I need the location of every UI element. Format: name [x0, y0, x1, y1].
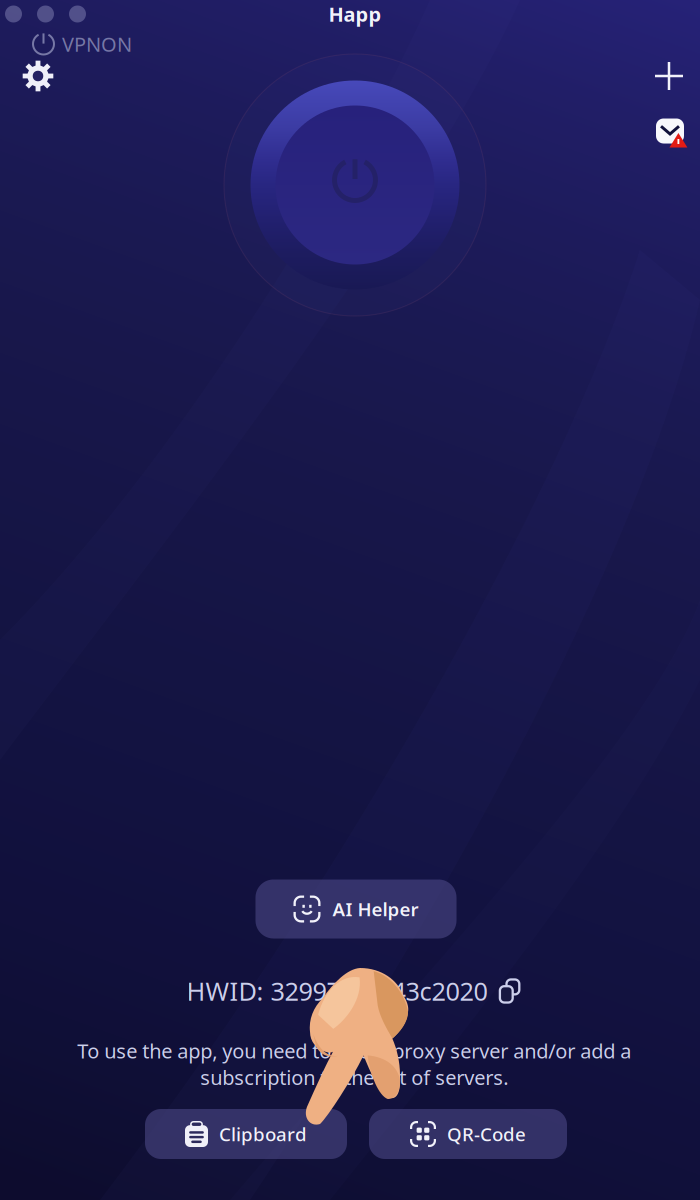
button[interactable]: AI Helper: [255, 879, 456, 938]
staticText: HWID: 32997aa2f43c2020: [186, 974, 487, 1008]
button[interactable]: Notifications: [649, 112, 691, 150]
staticText: VPNON: [62, 31, 132, 57]
staticText: Happ: [328, 1, 381, 27]
button[interactable]: Add configuration: [645, 52, 693, 100]
staticText: To use the app, you need to add a proxy …: [77, 1037, 631, 1090]
staticText: Clipboard: [219, 1122, 307, 1146]
staticText: QR-Code: [447, 1122, 526, 1146]
button[interactable]: Copy HWID: [497, 977, 521, 1005]
button[interactable]: Clipboard: [145, 1109, 347, 1159]
button[interactable]: QR-Code: [369, 1109, 567, 1159]
staticText: AI Helper: [332, 897, 418, 921]
button[interactable]: Settings: [14, 52, 62, 100]
